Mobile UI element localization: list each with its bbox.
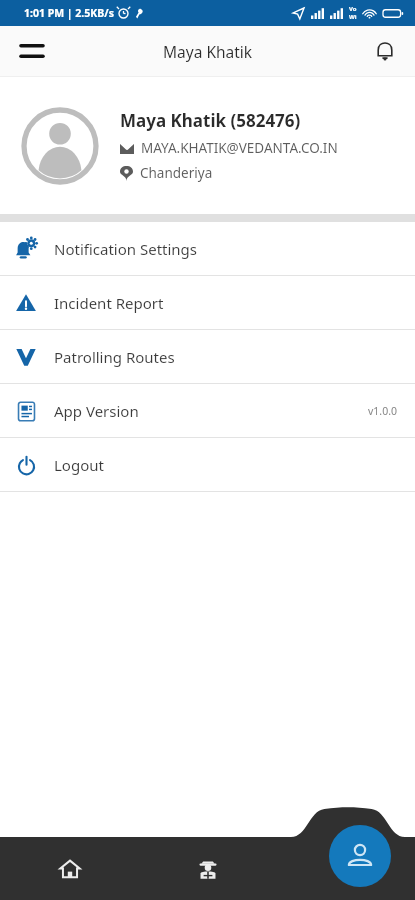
button[interactable]: Patrolling Routes (0, 330, 415, 383)
staticText: Wi (349, 13, 357, 21)
button[interactable]: Notification Settings (0, 222, 415, 275)
staticText: v1.0.0 (368, 404, 397, 418)
staticText: 1:01 PM | 2.5KB/s (24, 6, 114, 20)
staticText: Patrolling Routes (54, 347, 175, 367)
staticText: Notification Settings (54, 239, 198, 259)
button[interactable]: Profile (329, 825, 391, 887)
button[interactable]: Logout (0, 438, 415, 491)
button[interactable]: Maya Khatik (582476) (0, 77, 415, 214)
button[interactable]: Incident Report (0, 276, 415, 329)
button[interactable]: Open navigation menu (10, 29, 54, 73)
button[interactable]: App Version (0, 384, 415, 437)
staticText: Vo (349, 5, 357, 13)
staticText: Maya Khatik (582476) (120, 109, 301, 132)
button[interactable]: Home (0, 837, 139, 900)
staticText: Logout (54, 455, 104, 475)
button[interactable]: Notifications (363, 29, 407, 73)
staticText: Chanderiya (140, 164, 213, 182)
staticText: MAYA.KHATIK@VEDANTA.CO.IN (141, 139, 338, 157)
button[interactable]: Guards (139, 837, 277, 900)
staticText: Maya Khatik (163, 41, 253, 62)
staticText: App Version (54, 401, 139, 421)
staticText: Incident Report (54, 293, 164, 313)
